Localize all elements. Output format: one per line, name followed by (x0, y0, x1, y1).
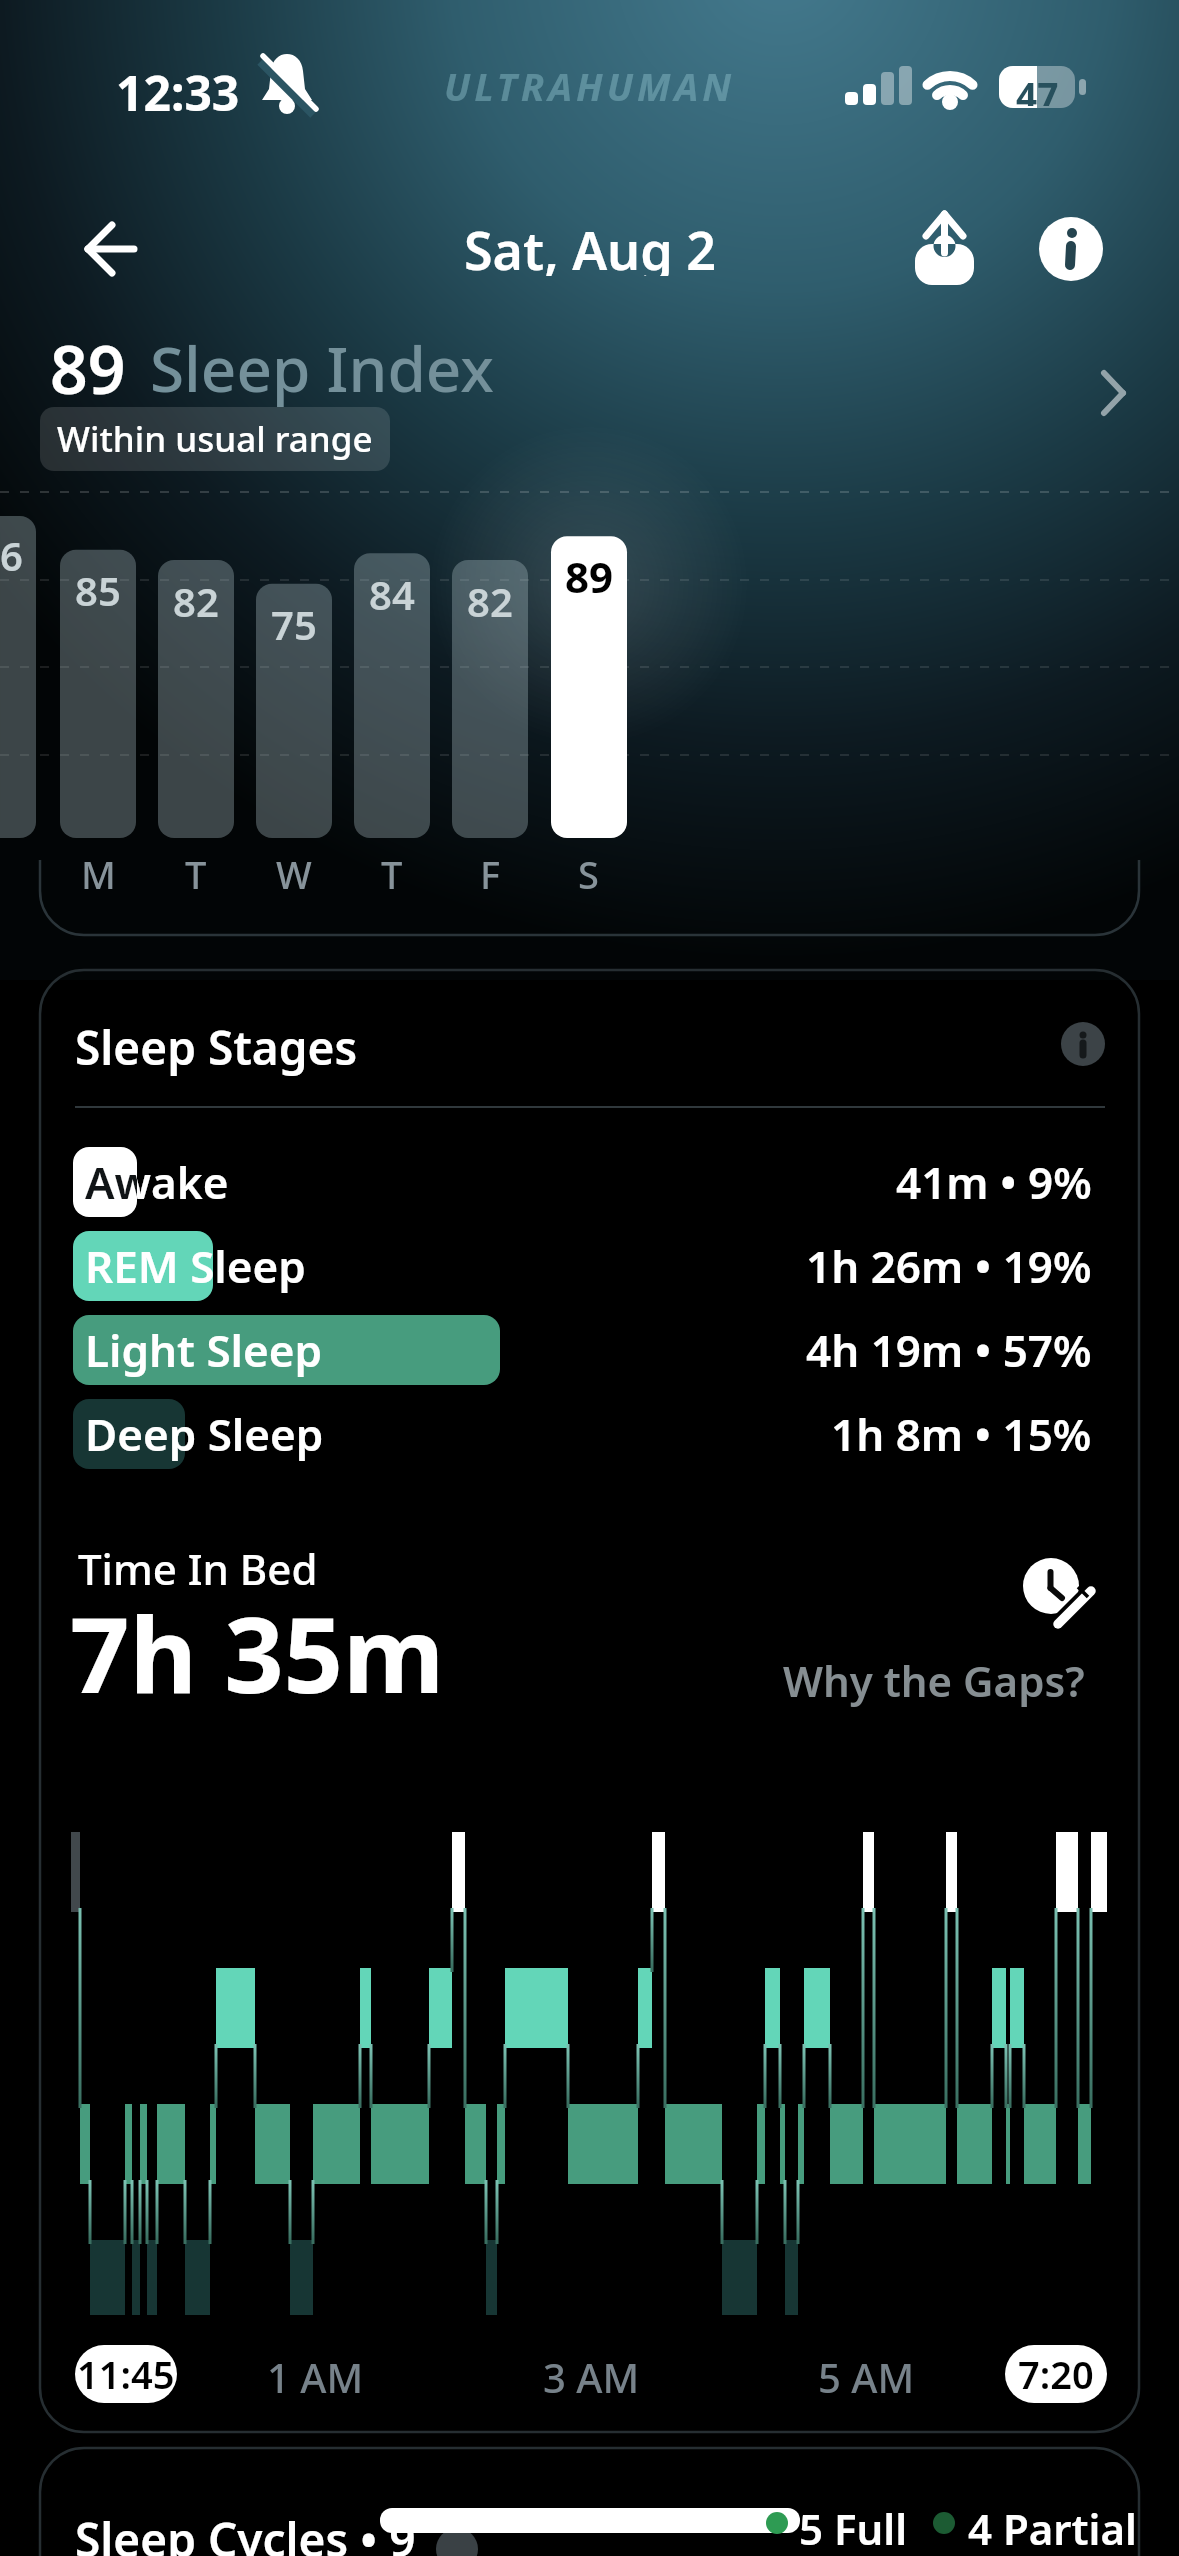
staticText: Awake (85, 1152, 137, 1212)
button[interactable] (73, 1147, 137, 1217)
staticText: Within usual range (57, 415, 373, 463)
button[interactable] (60, 220, 136, 280)
staticText: 3 AM (543, 2350, 640, 2400)
staticText: ULTRAHUMAN (444, 60, 736, 110)
staticText: 1h 26m • 19% (806, 1236, 1092, 1296)
button[interactable] (73, 1231, 213, 1301)
staticText: 4 Partial (968, 2500, 1137, 2556)
staticText: Why the Gaps? (783, 1652, 1085, 1709)
staticText: 7h 35m (70, 1582, 445, 1724)
button[interactable] (905, 210, 985, 290)
staticText: 89 (565, 548, 614, 598)
staticText: 4h 19m • 57% (806, 1320, 1092, 1380)
staticText: Deep Sleep (85, 1404, 324, 1464)
staticText: REM Sleep (85, 1236, 306, 1296)
staticText: Awake (85, 1152, 229, 1212)
staticText: T (381, 848, 403, 892)
staticText: 12:33 (116, 60, 240, 125)
button[interactable]: Why the Gaps? (700, 1650, 1085, 1710)
button[interactable]: Within usual range (40, 407, 390, 471)
staticText: Light Sleep (85, 1320, 323, 1380)
staticText: 11:45 (77, 2348, 175, 2400)
staticText: 84 (369, 567, 415, 617)
staticText: 82 (173, 574, 219, 624)
button[interactable] (30, 320, 1150, 420)
staticText: 47 (1016, 70, 1059, 106)
button[interactable] (1035, 214, 1105, 284)
staticText: 5 Full (799, 2500, 908, 2556)
staticText: S (578, 848, 599, 892)
staticText: Sat, Aug 2 (464, 214, 717, 276)
staticText: W (276, 848, 312, 892)
staticText: 85 (75, 563, 121, 613)
staticText: Sleep Index (150, 326, 494, 410)
staticText: 75 (271, 597, 317, 647)
staticText: F (480, 848, 501, 892)
button[interactable] (73, 1399, 185, 1469)
staticText: M (81, 848, 116, 892)
button[interactable] (73, 1315, 500, 1385)
staticText: 1 AM (267, 2350, 364, 2400)
staticText: T (185, 848, 207, 892)
staticText: 89 (50, 323, 126, 413)
staticText: 82 (467, 574, 513, 624)
staticText: Time In Bed (78, 1540, 318, 1597)
staticText: 7:20 (1018, 2348, 1094, 2400)
staticText: 1h 8m • 15% (831, 1404, 1092, 1464)
staticText: Sleep Cycles • 9 (75, 2508, 416, 2556)
staticText: 5 AM (818, 2350, 915, 2400)
staticText: 6 (0, 528, 23, 578)
staticText: 41m • 9% (896, 1152, 1092, 1212)
staticText: Sleep Stages (75, 1016, 358, 1079)
